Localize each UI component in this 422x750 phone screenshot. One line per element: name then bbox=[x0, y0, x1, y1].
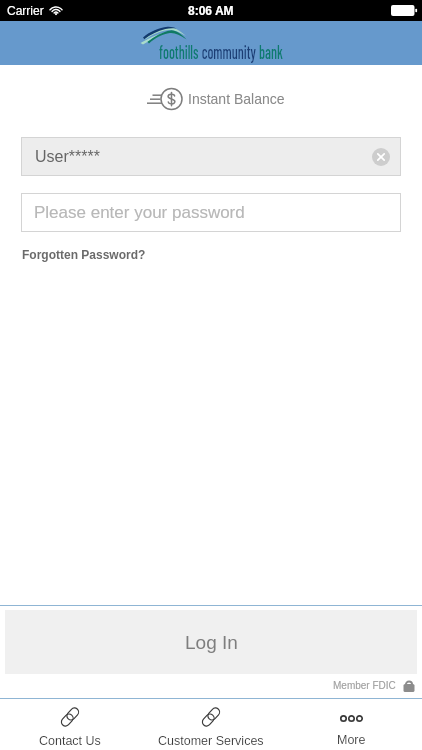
staticText: bank bbox=[259, 41, 283, 63]
button[interactable]: Clear user name bbox=[372, 148, 390, 166]
button[interactable]: Customer Services bbox=[140, 706, 281, 750]
staticText: Customer Services bbox=[158, 734, 264, 748]
staticText: Contact Us bbox=[39, 734, 101, 748]
button[interactable]: More bbox=[281, 706, 422, 750]
staticText: Log In bbox=[185, 632, 238, 653]
button[interactable]: Instant Balance bbox=[150, 87, 285, 111]
button[interactable]: Forgotten Password? bbox=[22, 248, 146, 261]
staticText: Carrier bbox=[7, 4, 44, 17]
staticText: Instant Balance bbox=[188, 91, 285, 107]
button[interactable]: Contact Us bbox=[0, 706, 140, 750]
staticText: Please enter your password bbox=[34, 203, 245, 222]
staticText: Member FDIC bbox=[333, 680, 396, 691]
staticText: More bbox=[337, 733, 366, 747]
staticText: community bbox=[202, 41, 256, 63]
staticText: 8:06 AM bbox=[188, 4, 234, 17]
staticText: foothills bbox=[159, 41, 199, 63]
button[interactable]: Log In bbox=[5, 610, 417, 674]
staticText: User***** bbox=[35, 148, 100, 166]
button[interactable]: Please enter your password bbox=[21, 193, 401, 232]
button[interactable]: foothills bbox=[140, 26, 380, 65]
button[interactable]: User***** bbox=[21, 137, 401, 176]
